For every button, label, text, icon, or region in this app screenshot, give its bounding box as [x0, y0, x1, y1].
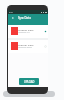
button[interactable]: Teacher Data — [8, 40, 48, 53]
button[interactable]: UPLOAD — [19, 78, 39, 85]
staticText: Updated 2 d — [18, 31, 30, 34]
staticText: Sync Data — [18, 16, 31, 20]
button[interactable]: Student Data — [8, 25, 48, 38]
staticText: 9:41 — [9, 11, 14, 14]
button[interactable]: Back — [12, 17, 14, 19]
staticText: UPLOAD — [24, 80, 35, 84]
staticText: Student Data — [18, 28, 34, 31]
staticText: Teacher Data — [18, 43, 34, 46]
staticText: Updated today — [18, 46, 32, 49]
